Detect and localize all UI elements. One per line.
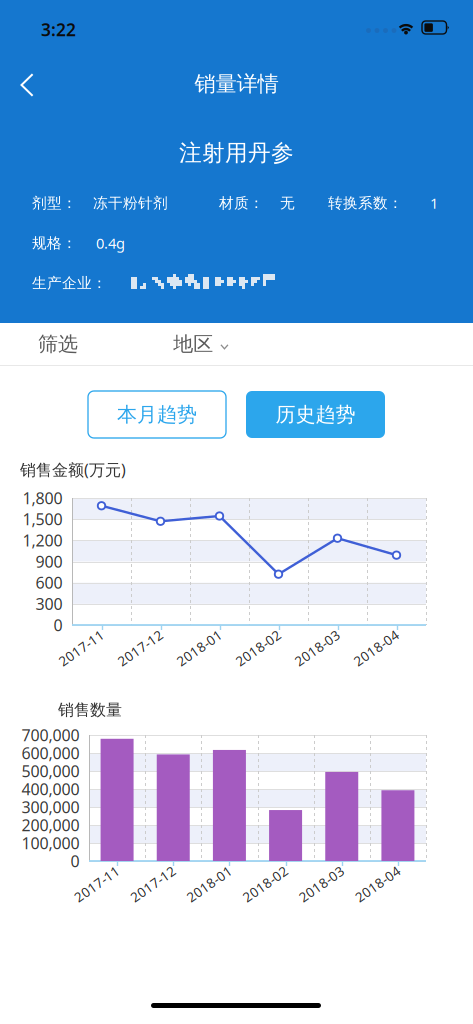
staticText: 600 xyxy=(35,572,62,593)
staticText: 2018-01 xyxy=(173,640,225,657)
staticText: 0 xyxy=(70,850,79,872)
staticText: 200,000 xyxy=(21,814,79,836)
staticText: 销量详情 xyxy=(194,71,278,97)
staticText: 2018-04 xyxy=(352,876,404,893)
button[interactable]: 筛选 xyxy=(0,323,116,365)
staticText: 无 xyxy=(280,194,295,212)
staticText: 2018-04 xyxy=(350,640,402,657)
staticText: 2018-02 xyxy=(232,640,284,657)
staticText: 筛选 xyxy=(38,332,78,356)
staticText: 生产企业： xyxy=(32,274,107,292)
button[interactable]: 历史趋势 xyxy=(246,391,385,438)
button[interactable]: Back xyxy=(0,62,52,108)
staticText: 地区 xyxy=(173,332,213,356)
staticText: 1 xyxy=(430,193,438,213)
staticText: 销售数量 xyxy=(58,700,122,720)
staticText: 300,000 xyxy=(21,796,79,818)
staticText: 2017-11 xyxy=(55,640,107,657)
staticText: 0.4g xyxy=(96,233,125,253)
staticText: 材质： xyxy=(219,194,264,212)
staticText: 1,200 xyxy=(22,530,62,551)
staticText: 2017-12 xyxy=(127,876,179,893)
staticText: 400,000 xyxy=(21,778,79,800)
staticText: 历史趋势 xyxy=(275,402,355,427)
staticText: 销售金额(万元) xyxy=(20,459,126,480)
button[interactable]: 地区 xyxy=(146,323,256,365)
staticText: 2018-03 xyxy=(291,640,343,657)
staticText: 600,000 xyxy=(21,742,79,764)
staticText: 2017-12 xyxy=(114,640,166,657)
button[interactable]: 本月趋势 xyxy=(88,391,226,438)
staticText: 2018-02 xyxy=(240,876,292,893)
staticText: 0 xyxy=(53,614,62,636)
staticText: 1,500 xyxy=(22,508,62,530)
staticText: 700,000 xyxy=(21,724,79,746)
staticText: 2018-03 xyxy=(296,876,348,893)
staticText: 注射用丹参 xyxy=(179,139,294,167)
staticText: 1,800 xyxy=(22,487,62,509)
staticText: 2017-11 xyxy=(71,876,123,893)
staticText: 300 xyxy=(35,593,62,614)
staticText: 本月趋势 xyxy=(117,402,197,427)
staticText: 3:22 xyxy=(41,18,76,41)
staticText: 2018-01 xyxy=(183,876,235,893)
staticText: 规格： xyxy=(32,234,77,252)
staticText: 剂型： xyxy=(32,194,77,212)
staticText: 900 xyxy=(35,551,62,572)
staticText: 转换系数： xyxy=(328,194,403,212)
staticText: 冻干粉针剂 xyxy=(93,194,168,212)
staticText: 100,000 xyxy=(21,832,79,854)
staticText: 500,000 xyxy=(21,760,79,782)
